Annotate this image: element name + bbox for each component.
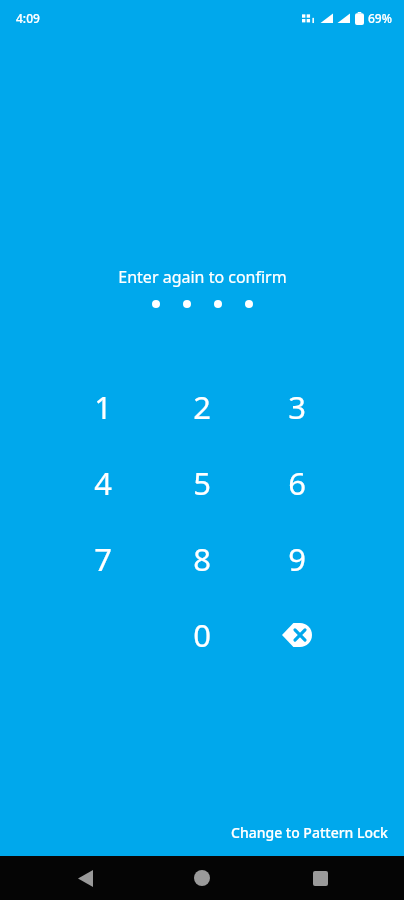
staticText: 1 [94, 386, 112, 428]
button[interactable]: 4 [60, 448, 146, 518]
staticText: 8 [193, 538, 211, 580]
staticText: 6 [288, 462, 306, 504]
staticText: 4:09 [16, 10, 40, 26]
staticText: Change to Pattern Lock [231, 823, 388, 842]
button[interactable]: 8 [159, 524, 245, 594]
staticText: 7 [94, 538, 112, 580]
staticText: 2 [193, 386, 211, 428]
button[interactable]: Home [174, 856, 230, 900]
button[interactable]: 1 [60, 372, 146, 442]
staticText: 5 [193, 462, 211, 504]
button[interactable]: Change to Pattern Lock [215, 815, 404, 850]
staticText: Enter again to confirm [118, 266, 287, 288]
button[interactable]: Back [57, 856, 113, 900]
button[interactable]: 0 [159, 600, 245, 670]
button[interactable]: 2 [159, 372, 245, 442]
button[interactable]: 5 [159, 448, 245, 518]
button[interactable]: 6 [254, 448, 340, 518]
staticText: 0 [193, 614, 211, 656]
button[interactable]: 3 [254, 372, 340, 442]
button[interactable]: 9 [254, 524, 340, 594]
button[interactable]: Recent apps [292, 856, 348, 900]
staticText: 69% [368, 10, 392, 26]
staticText: 4 [94, 462, 112, 504]
staticText: 9 [288, 538, 306, 580]
button[interactable]: Delete [254, 600, 340, 670]
button[interactable]: 7 [60, 524, 146, 594]
staticText: 3 [288, 386, 306, 428]
